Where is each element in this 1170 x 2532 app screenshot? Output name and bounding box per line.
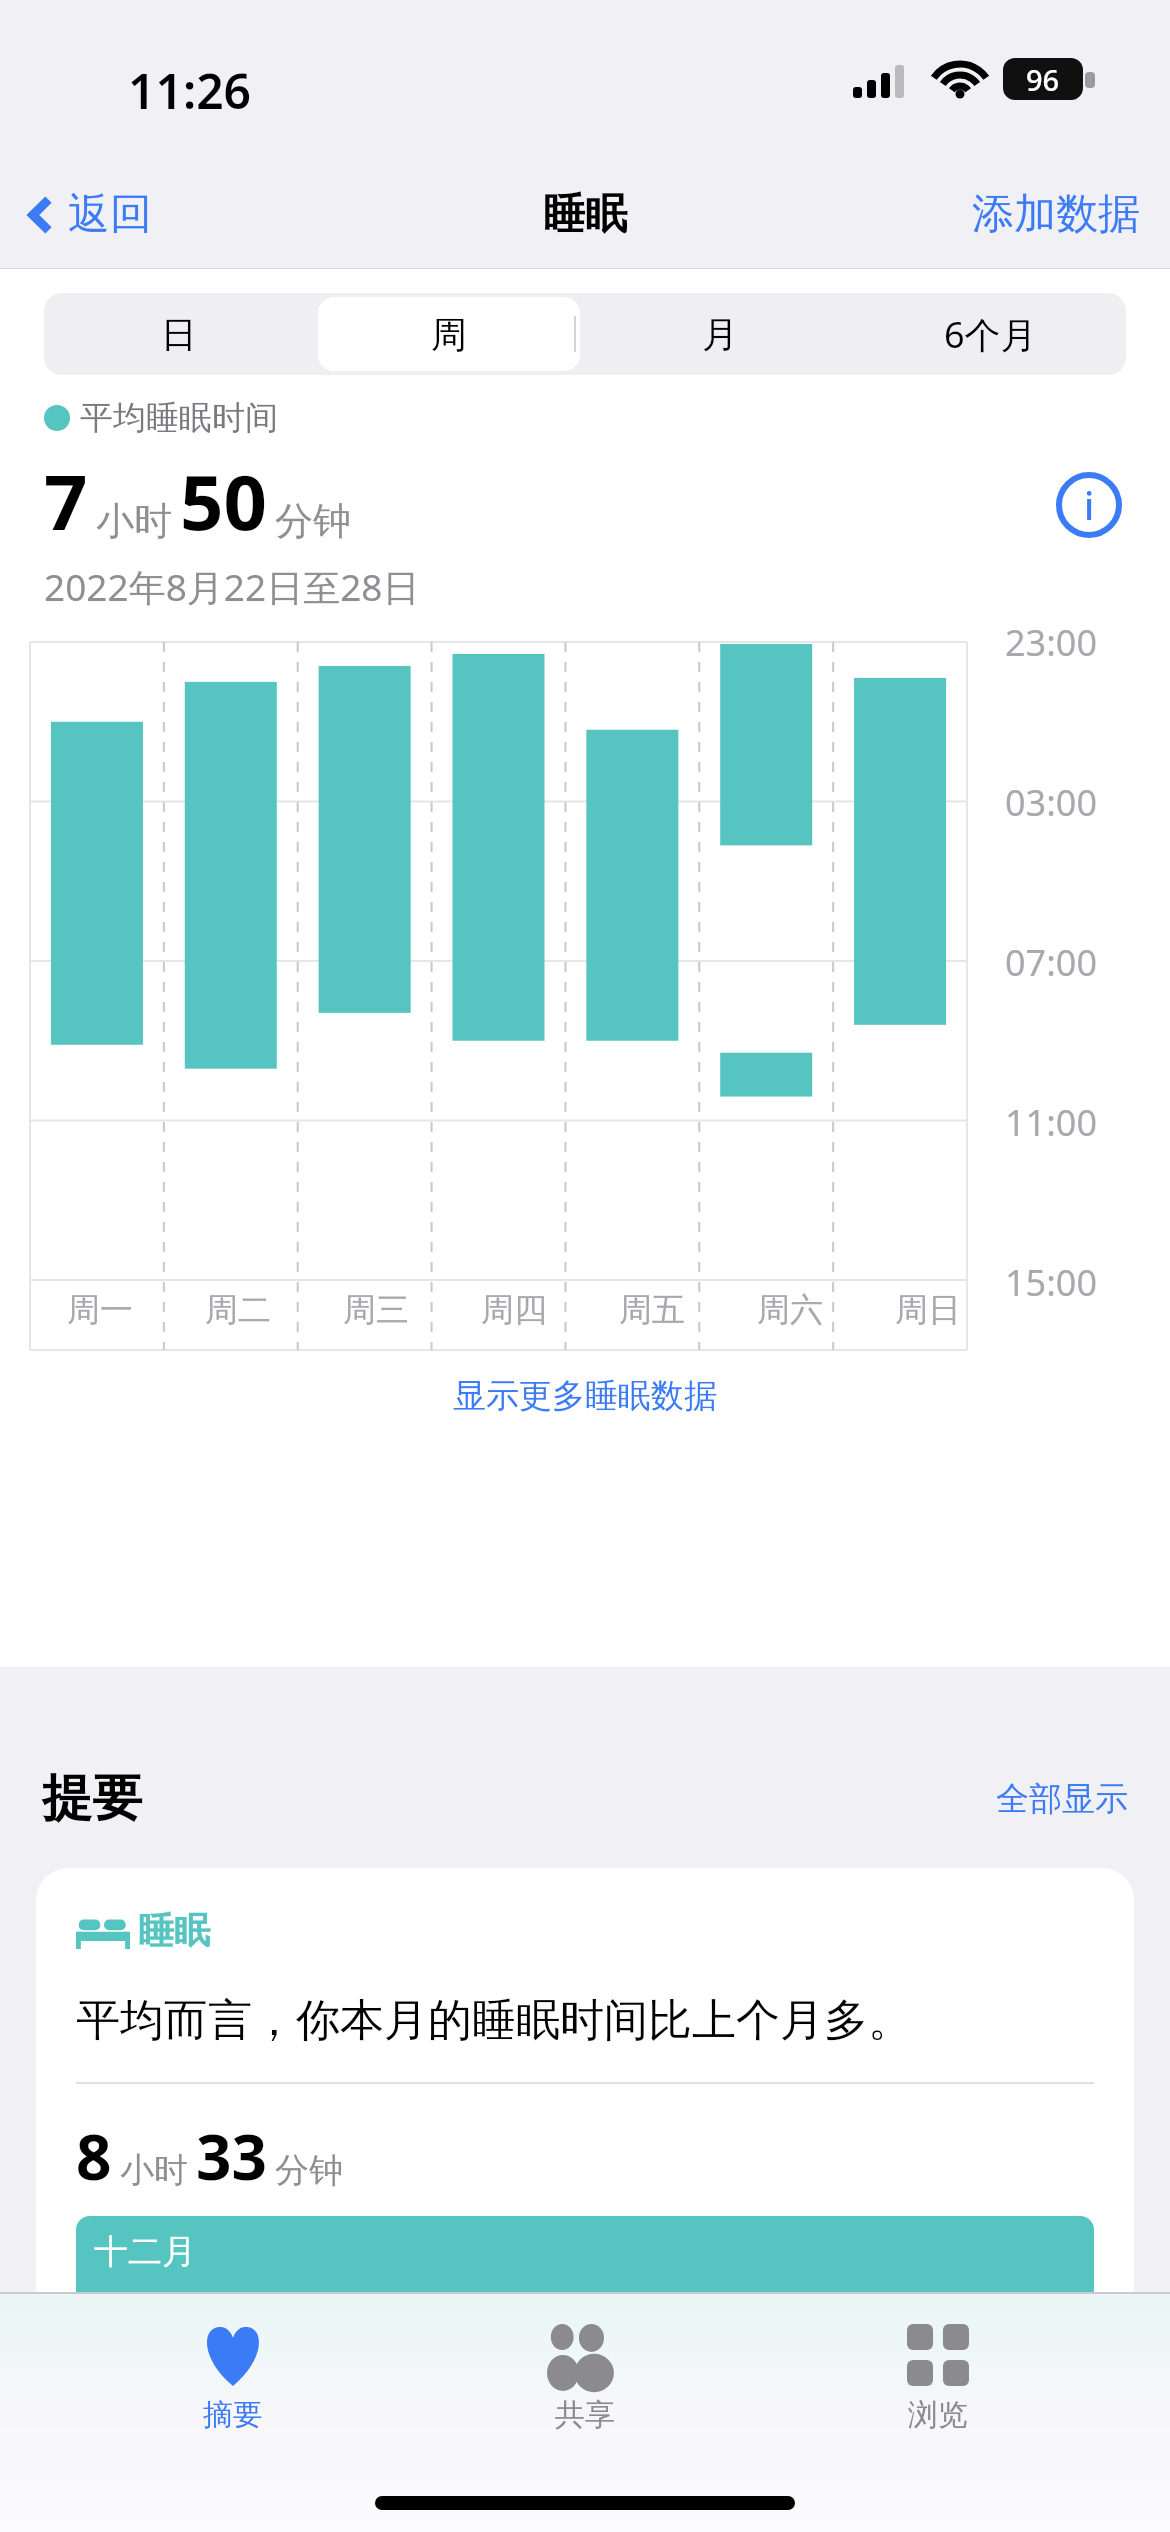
button[interactable]: 6个月 xyxy=(859,297,1122,371)
staticText: 添加数据 xyxy=(972,188,1140,241)
button[interactable]: 信息 xyxy=(1056,472,1122,538)
staticText: 摘要 xyxy=(203,2396,263,2434)
staticText: 周三 xyxy=(343,1289,409,1331)
staticText: 23:00 xyxy=(1005,618,1098,667)
button[interactable]: 睡眠 xyxy=(36,1868,1134,2388)
staticText: i xyxy=(1084,479,1095,531)
staticText: 周一 xyxy=(67,1289,133,1331)
staticText: 小时 xyxy=(120,2149,188,2192)
staticText: 全部显示 xyxy=(996,1778,1128,1820)
staticText: 月 xyxy=(702,312,738,357)
staticText: 8 xyxy=(76,2114,112,2198)
staticText: 平均睡眠时间 xyxy=(80,397,278,439)
button[interactable]: 摘要 xyxy=(113,2318,353,2440)
staticText: 6个月 xyxy=(944,310,1037,359)
staticText: 十二月 xyxy=(94,2230,196,2273)
staticText: 浏览 xyxy=(908,2396,968,2434)
button[interactable]: 返回 xyxy=(24,188,152,241)
staticText: 周 xyxy=(431,312,467,357)
staticText: 33 xyxy=(196,2114,267,2198)
staticText: 提要 xyxy=(42,1767,142,1830)
button[interactable]: 月 xyxy=(588,297,851,371)
button[interactable]: 日 xyxy=(48,297,310,371)
staticText: 周二 xyxy=(205,1289,271,1331)
staticText: 03:00 xyxy=(1005,778,1098,827)
staticText: 11:26 xyxy=(128,58,252,123)
staticText: 2022年8月22日至28日 xyxy=(44,561,420,612)
button[interactable]: 显示更多睡眠数据 xyxy=(0,1375,1170,1417)
staticText: 07:00 xyxy=(1005,938,1098,987)
staticText: 50 xyxy=(180,449,267,553)
staticText: 分钟 xyxy=(275,2149,343,2192)
staticText: 11:00 xyxy=(1005,1098,1098,1147)
staticText: 小时 xyxy=(96,497,172,545)
staticText: 返回 xyxy=(68,188,152,241)
staticText: 周五 xyxy=(619,1289,685,1331)
staticText: 96 xyxy=(1026,60,1060,99)
staticText: 分钟 xyxy=(275,497,351,545)
staticText: 周六 xyxy=(757,1289,823,1331)
button[interactable]: 全部显示 xyxy=(996,1778,1128,1820)
staticText: 周四 xyxy=(481,1289,547,1331)
staticText: 睡眠 xyxy=(138,1908,210,1953)
staticText: 15:00 xyxy=(1005,1258,1098,1307)
staticText: 平均而言，你本月的睡眠时间比上个月多。 xyxy=(76,1993,912,2048)
staticText: 周日 xyxy=(895,1289,961,1331)
button[interactable]: 添加数据 xyxy=(972,188,1140,241)
staticText: 7 xyxy=(44,449,88,553)
staticText: 共享 xyxy=(555,2396,615,2434)
button[interactable]: 周 xyxy=(318,297,580,371)
staticText: 睡眠 xyxy=(543,188,627,241)
staticText: 显示更多睡眠数据 xyxy=(453,1375,717,1417)
button[interactable]: 浏览 xyxy=(818,2318,1058,2440)
button[interactable]: 共享 xyxy=(465,2318,705,2440)
staticText: 日 xyxy=(161,312,197,357)
